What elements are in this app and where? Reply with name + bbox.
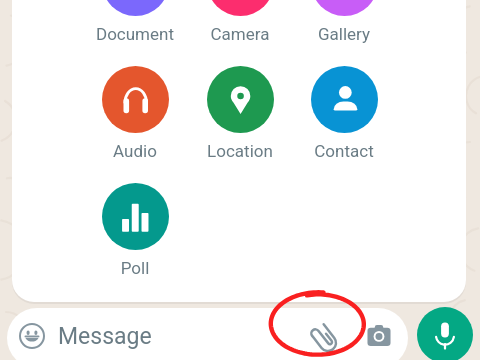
button[interactable]: Attach xyxy=(308,322,341,355)
button[interactable]: Camera xyxy=(188,0,292,47)
staticText: Audio xyxy=(83,141,187,163)
button[interactable]: Gallery xyxy=(292,0,396,47)
staticText: Location xyxy=(188,141,292,163)
staticText: Document xyxy=(83,24,187,46)
button[interactable]: Emoji xyxy=(19,323,45,349)
staticText: Gallery xyxy=(292,24,396,46)
button[interactable]: Voice message xyxy=(417,307,473,360)
button[interactable] xyxy=(7,308,408,360)
button[interactable]: Poll xyxy=(83,177,187,281)
button[interactable]: Location xyxy=(188,60,292,164)
staticText: Camera xyxy=(188,24,292,46)
button[interactable]: Camera xyxy=(367,324,391,346)
button[interactable]: Document xyxy=(83,0,187,47)
staticText: Poll xyxy=(83,258,187,280)
button[interactable]: Contact xyxy=(292,60,396,164)
button[interactable]: Audio xyxy=(83,60,187,164)
staticText: Message xyxy=(58,323,152,350)
staticText: Contact xyxy=(292,141,396,163)
